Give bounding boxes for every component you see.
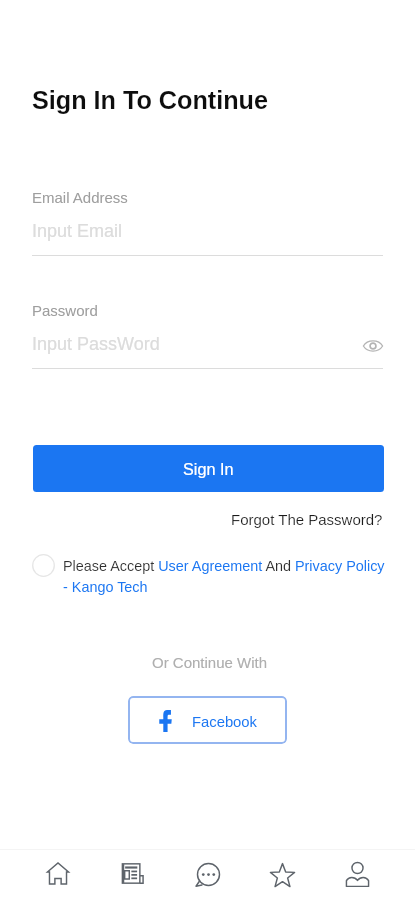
staticText: Email Address: [32, 189, 128, 206]
button[interactable]: Profile: [320, 848, 395, 898]
staticText: Forgot The Password?: [231, 511, 383, 528]
staticText: Sign In: [183, 460, 234, 478]
button[interactable]: Home: [20, 848, 95, 898]
staticText: Or Continue With: [152, 654, 268, 671]
button[interactable]: Facebook: [128, 696, 287, 744]
button[interactable]: Show password: [362, 335, 384, 357]
button[interactable]: Accept terms: [32, 554, 55, 577]
button[interactable]: Messages: [170, 848, 245, 898]
button[interactable]: Forgot The Password?: [231, 511, 383, 528]
staticText: Password: [32, 302, 98, 319]
button[interactable]: Sign In: [33, 445, 384, 492]
button[interactable]: Favorites: [245, 848, 320, 898]
staticText: Input PassWord: [32, 334, 160, 354]
staticText: Facebook: [192, 714, 257, 731]
staticText: Sign In To Continue: [32, 86, 268, 114]
staticText: Please Accept User Agreement And Privacy…: [63, 558, 385, 595]
staticText: Input Email: [32, 221, 123, 241]
button[interactable]: News: [95, 848, 170, 898]
